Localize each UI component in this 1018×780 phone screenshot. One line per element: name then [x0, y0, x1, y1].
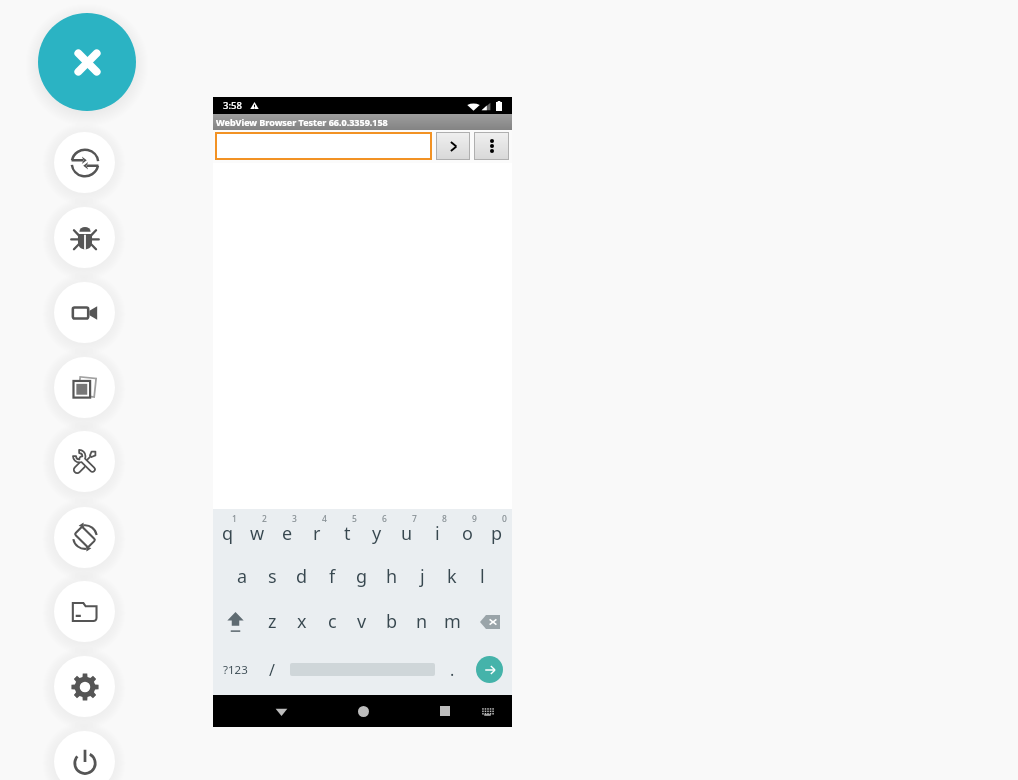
button[interactable]: Back	[265, 695, 297, 727]
button[interactable]: 9	[452, 509, 482, 554]
staticText: y	[372, 521, 382, 546]
staticText: g	[356, 564, 368, 589]
button[interactable]	[215, 132, 432, 160]
button[interactable]: m	[437, 599, 467, 644]
button[interactable]: v	[347, 599, 377, 644]
staticText: 8	[442, 513, 447, 525]
staticText: o	[462, 521, 473, 546]
staticText: 2	[262, 513, 267, 525]
button[interactable]: 6	[362, 509, 392, 554]
staticText: 3:58	[223, 99, 242, 112]
button[interactable]: z	[257, 599, 287, 644]
button[interactable]: Bug report	[54, 207, 115, 268]
button[interactable]: 7	[392, 509, 422, 554]
button[interactable]: d	[287, 554, 317, 599]
button[interactable]: Record screen	[54, 282, 115, 343]
staticText: m	[444, 609, 461, 634]
staticText: b	[386, 609, 398, 634]
staticText: /	[269, 659, 275, 681]
staticText: 7	[412, 513, 417, 525]
button[interactable]: Power	[54, 731, 115, 780]
button[interactable]: Keyboard	[473, 697, 501, 725]
staticText: d	[296, 564, 308, 589]
staticText: j	[420, 564, 425, 589]
staticText: e	[282, 521, 293, 546]
button[interactable]: Rotate screen	[54, 507, 115, 568]
button[interactable]: c	[317, 599, 347, 644]
button[interactable]: g	[347, 554, 377, 599]
button[interactable]: j	[407, 554, 437, 599]
button[interactable]: n	[407, 599, 437, 644]
staticText: a	[237, 564, 248, 589]
staticText: q	[222, 521, 234, 546]
button[interactable]: 5	[332, 509, 362, 554]
button[interactable]: Settings	[54, 656, 115, 717]
button[interactable]: ?123	[213, 644, 257, 695]
staticText: .	[450, 659, 455, 681]
staticText: p	[491, 521, 503, 546]
button[interactable]: x	[287, 599, 317, 644]
button[interactable]: Go	[436, 132, 470, 160]
staticText: x	[297, 609, 307, 634]
button[interactable]: Close	[38, 13, 136, 111]
button[interactable]: l	[467, 554, 497, 599]
staticText: l	[480, 564, 485, 589]
button[interactable]: k	[437, 554, 467, 599]
staticText: WebView Browser Tester 66.0.3359.158	[216, 116, 388, 128]
button[interactable]: a	[227, 554, 257, 599]
button[interactable]: 4	[302, 509, 332, 554]
button[interactable]: 1	[213, 509, 242, 554]
staticText: i	[435, 521, 440, 546]
button[interactable]: Extended controls	[54, 431, 115, 492]
staticText: n	[416, 609, 428, 634]
staticText: u	[401, 521, 413, 546]
staticText: s	[268, 564, 277, 589]
button[interactable]: 2	[242, 509, 272, 554]
button[interactable]: /	[257, 644, 287, 695]
staticText: 3	[292, 513, 297, 525]
button[interactable]: Backspace	[467, 599, 512, 644]
staticText: f	[329, 564, 336, 589]
button[interactable]: More options	[474, 132, 509, 160]
button[interactable]	[287, 644, 438, 695]
button[interactable]: 0	[482, 509, 512, 554]
button[interactable]: Home	[347, 695, 379, 727]
button[interactable]: 8	[422, 509, 452, 554]
button[interactable]: Folder	[54, 581, 115, 642]
button[interactable]: Enter	[466, 644, 512, 695]
button[interactable]: .	[438, 644, 466, 695]
staticText: 1	[232, 513, 237, 525]
button[interactable]: Shift	[213, 599, 257, 644]
button[interactable]: f	[317, 554, 347, 599]
button[interactable]: Take screenshot	[54, 357, 115, 418]
staticText: r	[313, 521, 321, 546]
button[interactable]: Recents	[429, 695, 461, 727]
staticText: h	[386, 564, 398, 589]
staticText: k	[447, 564, 457, 589]
staticText: 9	[472, 513, 477, 525]
button[interactable]: s	[257, 554, 287, 599]
staticText: 0	[502, 513, 507, 525]
staticText: c	[328, 609, 337, 634]
button[interactable]: h	[377, 554, 407, 599]
staticText: 5	[352, 513, 357, 525]
staticText: t	[344, 521, 351, 546]
staticText: 6	[382, 513, 387, 525]
staticText: w	[250, 521, 265, 546]
staticText: v	[357, 609, 367, 634]
button[interactable]: Rotate	[54, 132, 115, 193]
staticText: ?123	[223, 662, 248, 678]
button[interactable]: 3	[272, 509, 302, 554]
staticText: z	[268, 609, 277, 634]
staticText: 4	[322, 513, 327, 525]
button[interactable]: b	[377, 599, 407, 644]
